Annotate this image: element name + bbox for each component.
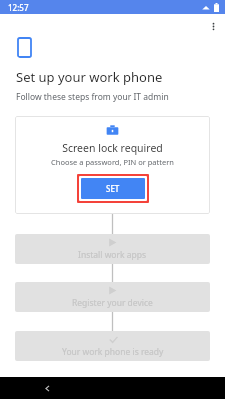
staticText: Your work phone is ready [62,346,164,358]
staticText: Set up your work phone [16,68,163,86]
button[interactable]: SET [81,178,145,199]
staticText: SET [106,183,120,194]
button[interactable]: Your work phone is ready [15,331,210,361]
staticText: Screen lock required [62,141,163,155]
staticText: 12:57 [8,2,29,13]
button[interactable]: Back [38,379,56,397]
button[interactable]: Register your device [15,282,210,312]
button[interactable]: More options [201,14,225,38]
button[interactable]: Install work apps [15,234,210,264]
staticText: Choose a password, PIN or pattern [51,157,174,167]
staticText: Register your device [72,297,153,309]
staticText: Install work apps [78,249,147,261]
staticText: Follow these steps from your IT admin [16,91,169,103]
button[interactable]: Screen lock required [15,116,210,214]
